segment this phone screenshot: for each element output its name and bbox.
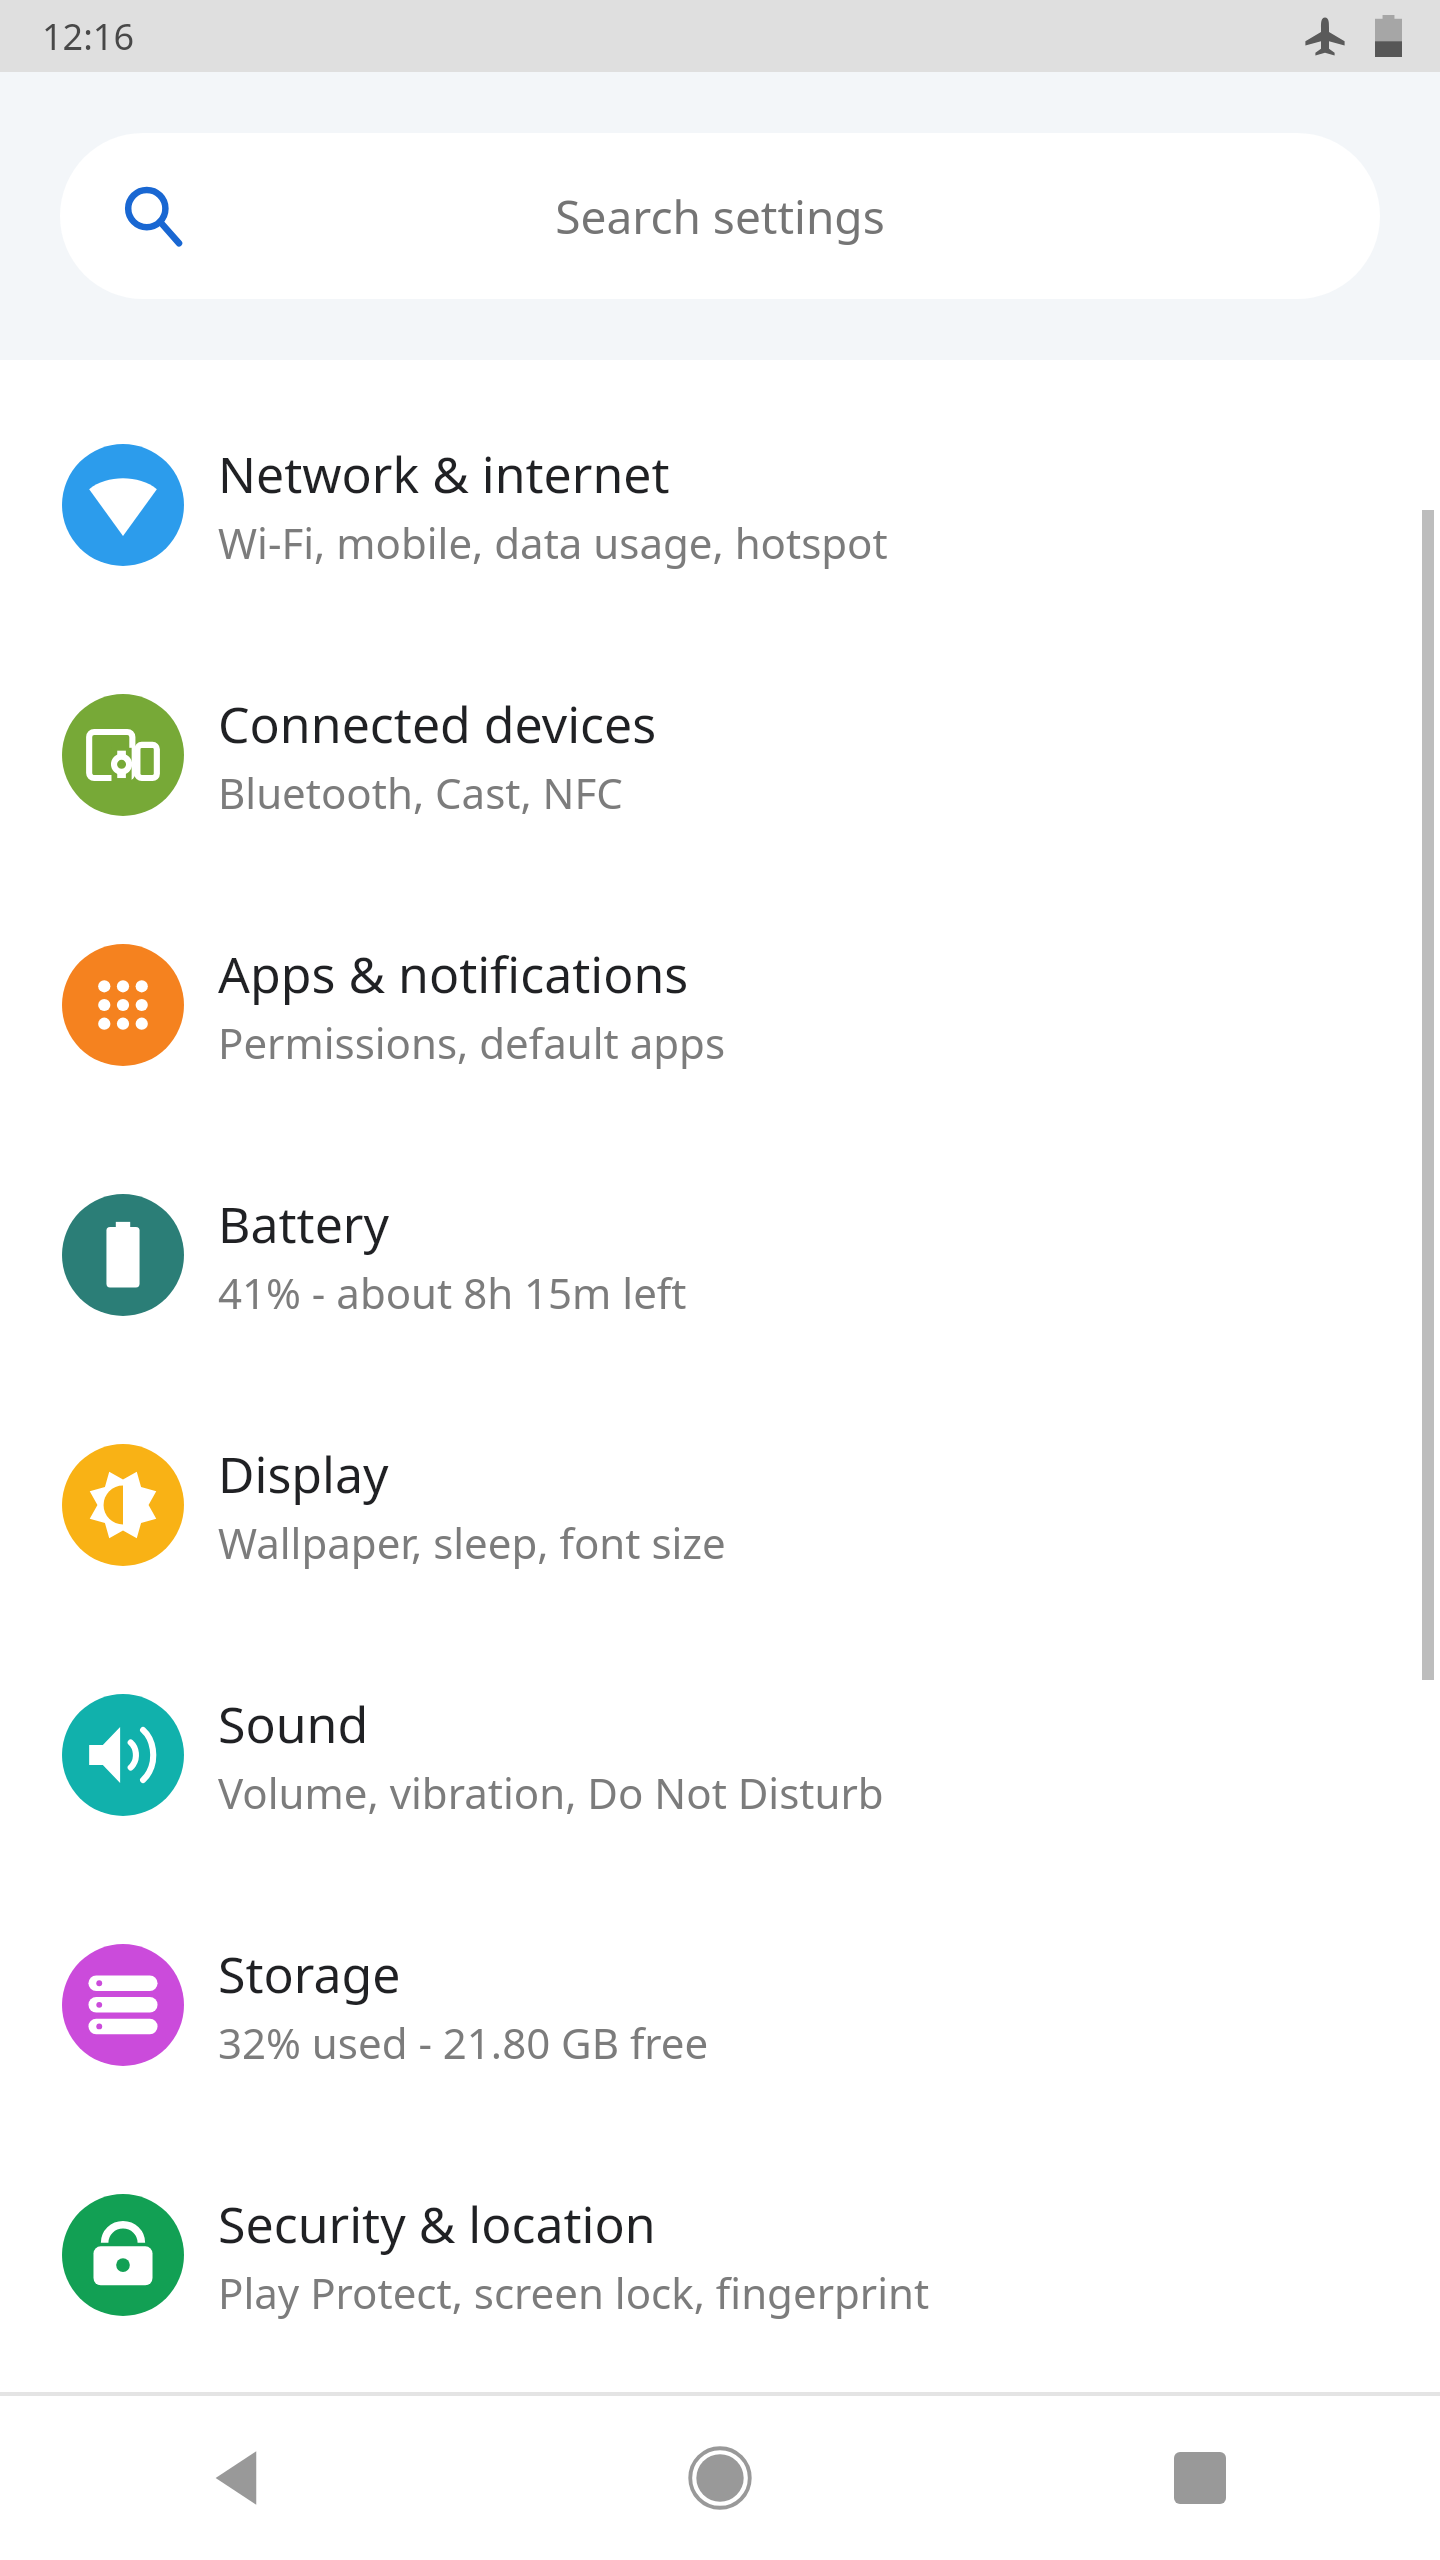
staticText: Wi-Fi, mobile, data usage, hotspot (218, 514, 888, 571)
staticText: Volume, vibration, Do Not Disturb (218, 1764, 884, 1821)
staticText: 41% - about 8h 15m left (218, 1264, 687, 1321)
staticText: 32% used - 21.80 GB free (218, 2014, 709, 2071)
button[interactable]: Network & internet (0, 380, 1440, 630)
staticText: Battery (218, 1190, 389, 1258)
staticText: Storage (218, 1940, 401, 2008)
staticText: Search settings (555, 185, 885, 248)
button[interactable]: Storage (0, 1880, 1440, 2130)
button[interactable]: Display (0, 1380, 1440, 1630)
button[interactable]: Apps & notifications (0, 880, 1440, 1130)
staticText: Network & internet (218, 440, 670, 508)
staticText: Bluetooth, Cast, NFC (218, 764, 623, 821)
button[interactable]: Battery (0, 1130, 1440, 1380)
button[interactable]: Back (0, 2396, 480, 2560)
staticText: 12:16 (42, 12, 135, 61)
other: Battery 41 percent (1375, 15, 1402, 57)
staticText: Play Protect, screen lock, fingerprint (218, 2264, 930, 2321)
staticText: Permissions, default apps (218, 1014, 726, 1071)
button[interactable]: Sound (0, 1630, 1440, 1880)
button[interactable]: Recent apps (960, 2396, 1440, 2560)
other: Airplane mode (1305, 16, 1345, 56)
staticText: Sound (218, 1690, 369, 1758)
button[interactable]: Security & location (0, 2130, 1440, 2380)
staticText: Apps & notifications (218, 940, 689, 1008)
staticText: Wallpaper, sleep, font size (218, 1514, 726, 1571)
button[interactable]: Home (480, 2396, 960, 2560)
staticText: Connected devices (218, 690, 657, 758)
staticText: Security & location (218, 2190, 656, 2258)
button[interactable]: Connected devices (0, 630, 1440, 880)
button[interactable]: Search settings (60, 133, 1380, 299)
staticText: Display (218, 1440, 389, 1508)
